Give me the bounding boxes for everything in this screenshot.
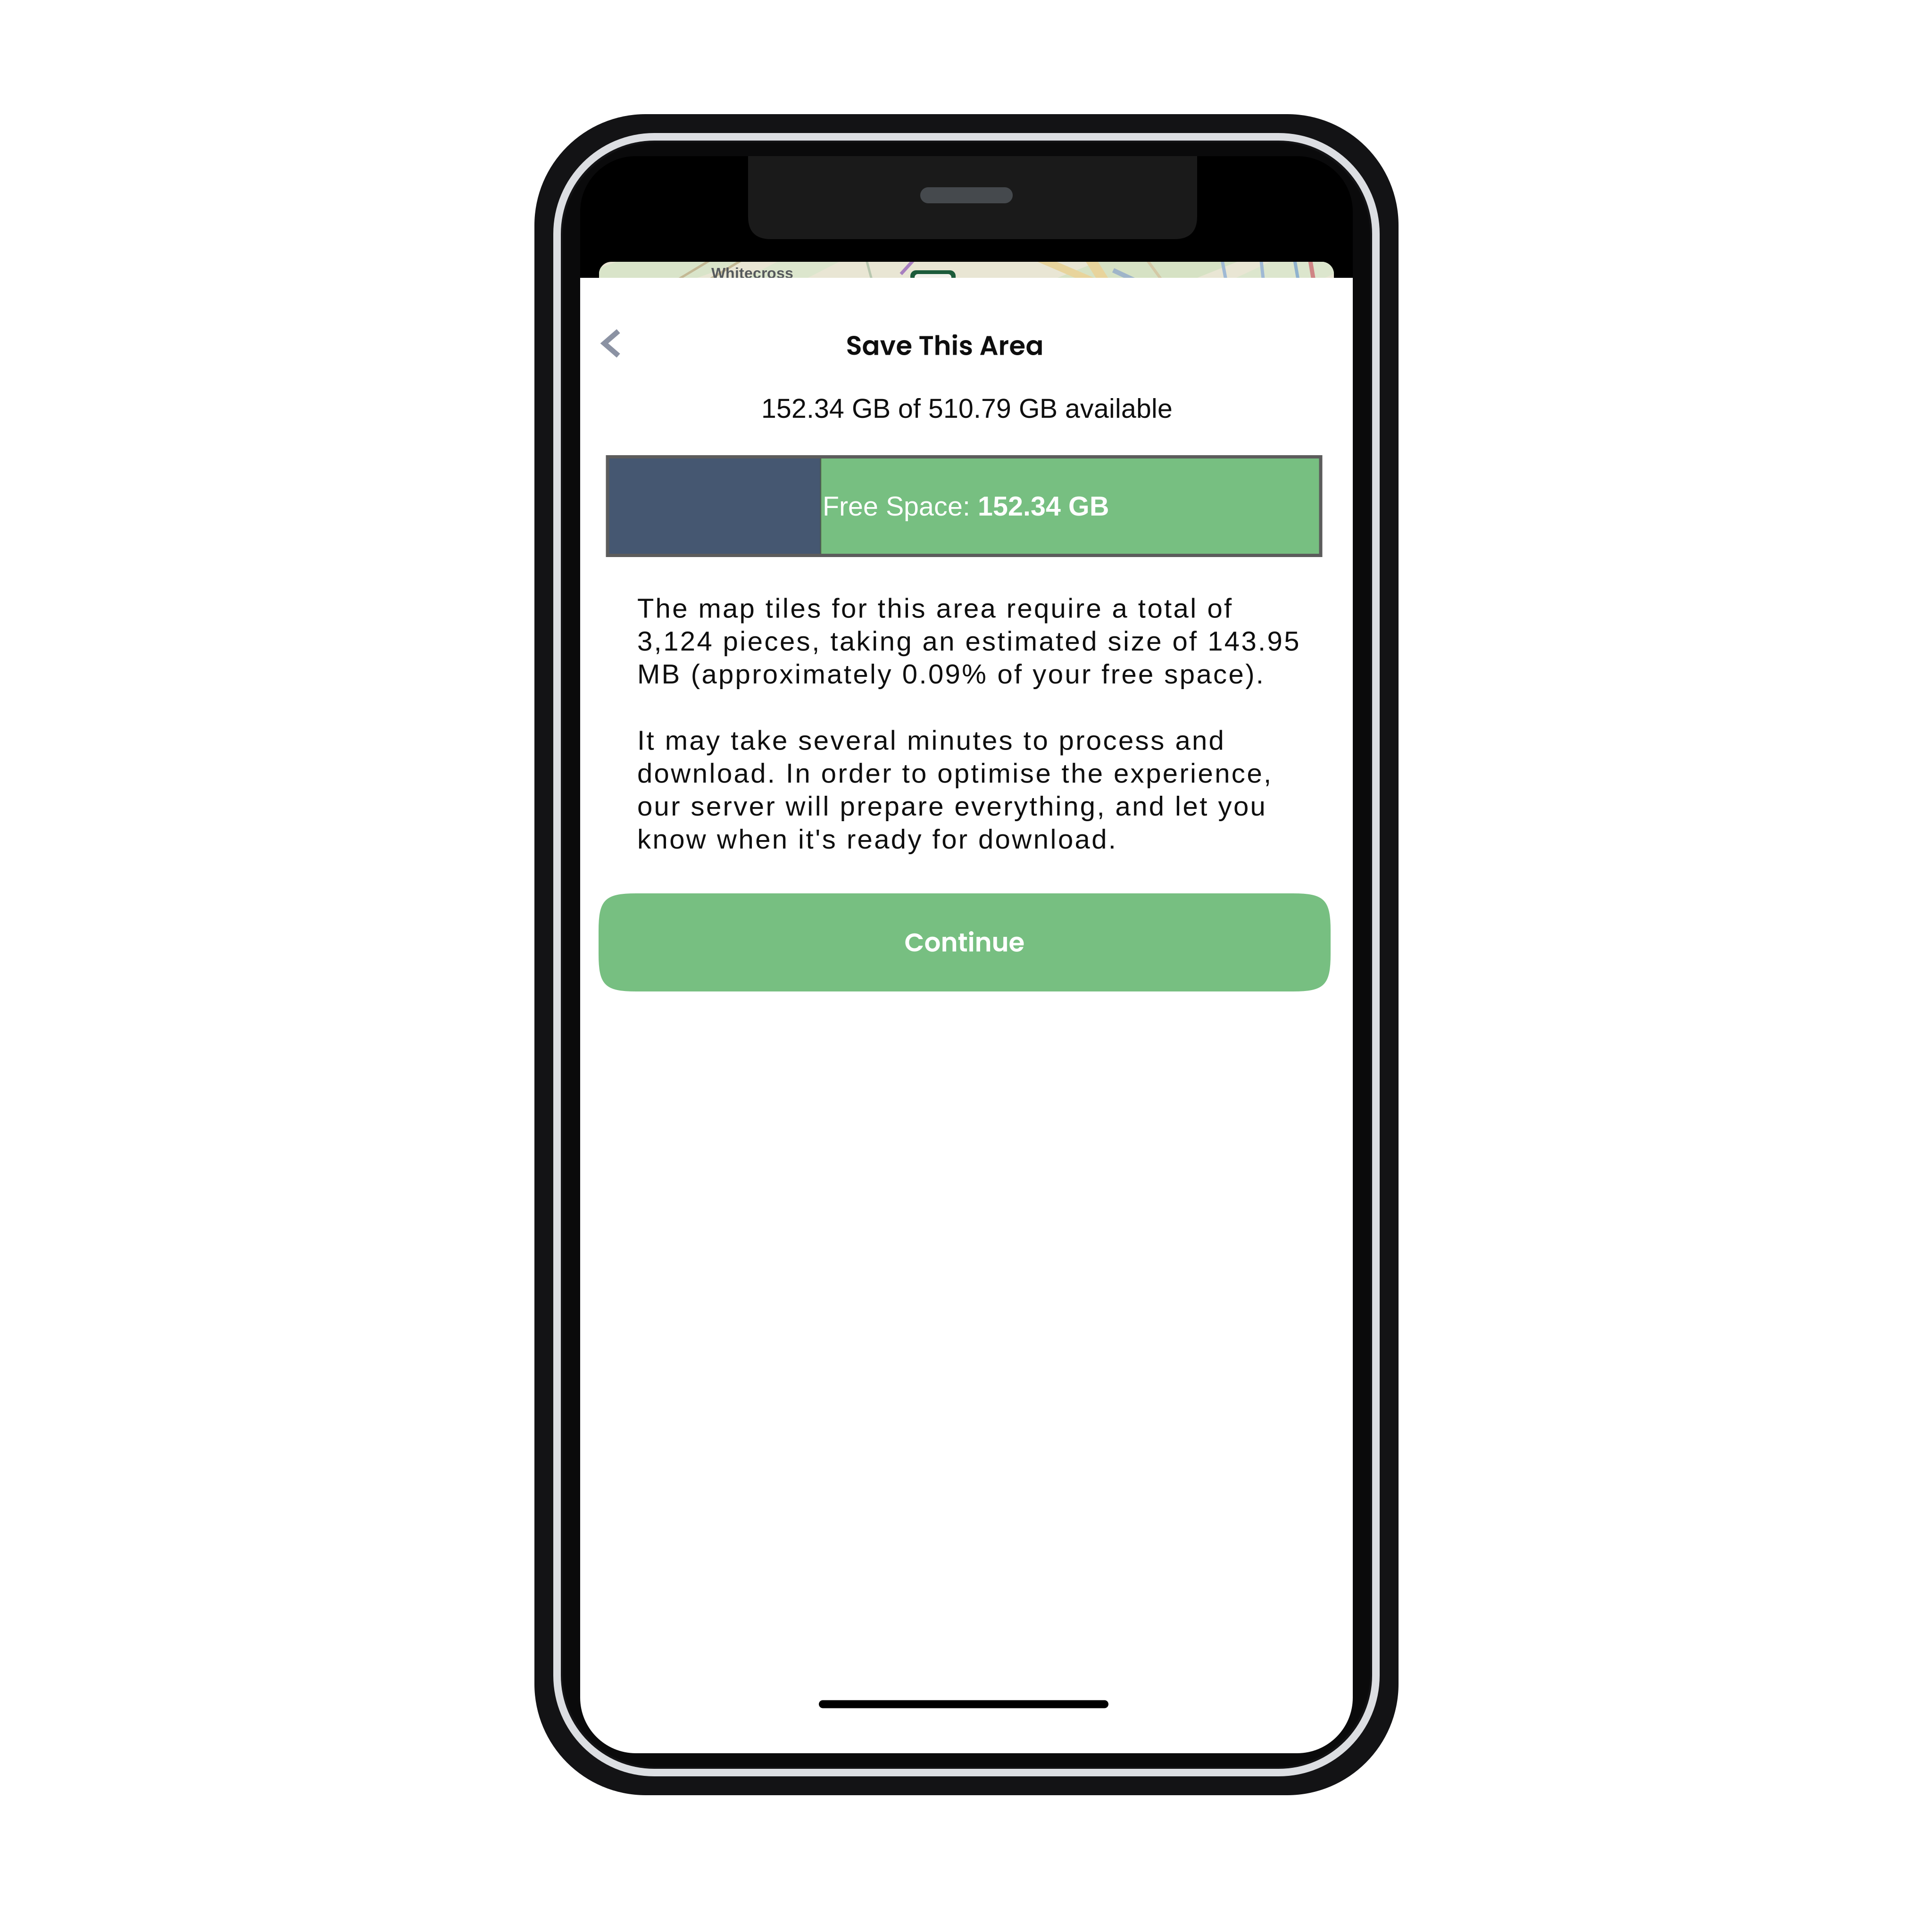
staticText: It may take several minutes to process a… bbox=[637, 725, 1271, 854]
staticText: Continue bbox=[904, 924, 1025, 960]
staticText: 152.34 GB bbox=[978, 491, 1109, 521]
button[interactable]: Continue bbox=[599, 893, 1331, 991]
staticText: Whitecross bbox=[711, 265, 793, 281]
staticText: Free Space: bbox=[823, 491, 978, 521]
staticText: 152.34 GB of 510.79 GB available bbox=[761, 393, 1173, 424]
staticText: The map tiles for this area require a to… bbox=[637, 593, 1299, 689]
button[interactable]: Back bbox=[576, 310, 647, 376]
staticText: Save This Area bbox=[846, 327, 1044, 364]
